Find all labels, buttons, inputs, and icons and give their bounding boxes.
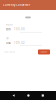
- button[interactable]: Back: [12, 94, 15, 97]
- staticText: CONVERT: [40, 51, 47, 53]
- staticText: Currency Converter: [3, 3, 30, 7]
- staticText: To: [6, 36, 9, 40]
- staticText: 109.32: [14, 41, 25, 45]
- staticText: 1 EUR = 1.09 USD: [4, 51, 15, 53]
- staticText: EUR: [6, 27, 11, 31]
- button[interactable]: Recents: [42, 94, 44, 97]
- button[interactable]: CONVERT: [38, 49, 50, 54]
- staticText: From: [6, 23, 12, 26]
- staticText: 100.00: [14, 27, 25, 31]
- staticText: USD: [6, 41, 11, 45]
- button[interactable]: Home: [27, 94, 30, 97]
